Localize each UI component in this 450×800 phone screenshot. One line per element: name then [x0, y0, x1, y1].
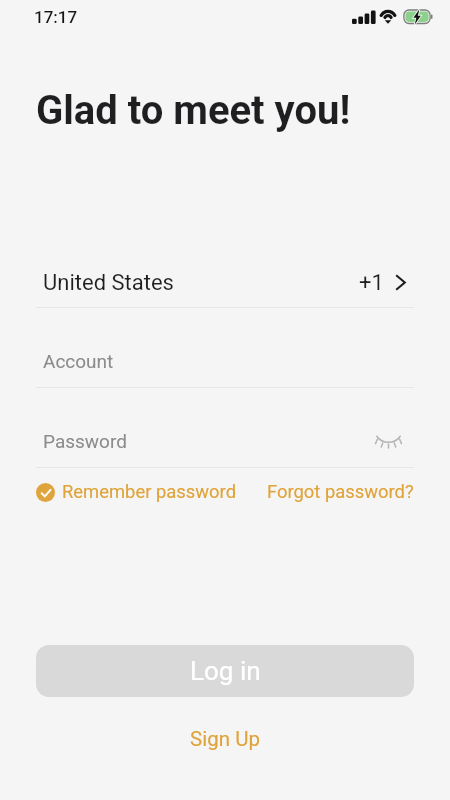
staticText: Account	[43, 350, 114, 372]
staticText: Remember password	[62, 481, 237, 503]
staticText: Password	[43, 430, 127, 452]
button[interactable]: Sign Up	[180, 722, 270, 756]
staticText: 17:17	[34, 7, 78, 27]
button[interactable]: Password	[36, 417, 356, 465]
button[interactable]: Remember password	[36, 481, 237, 503]
staticText: Log in	[190, 656, 261, 686]
staticText: Glad to meet you!	[36, 87, 351, 134]
staticText: +1	[359, 270, 384, 296]
button[interactable]: Log in	[36, 645, 414, 697]
button[interactable]: Account	[0, 337, 450, 385]
button[interactable]: Show password	[371, 424, 405, 458]
button[interactable]: United States	[0, 259, 450, 307]
staticText: United States	[43, 270, 174, 296]
button[interactable]: Forgot password?	[267, 481, 414, 503]
